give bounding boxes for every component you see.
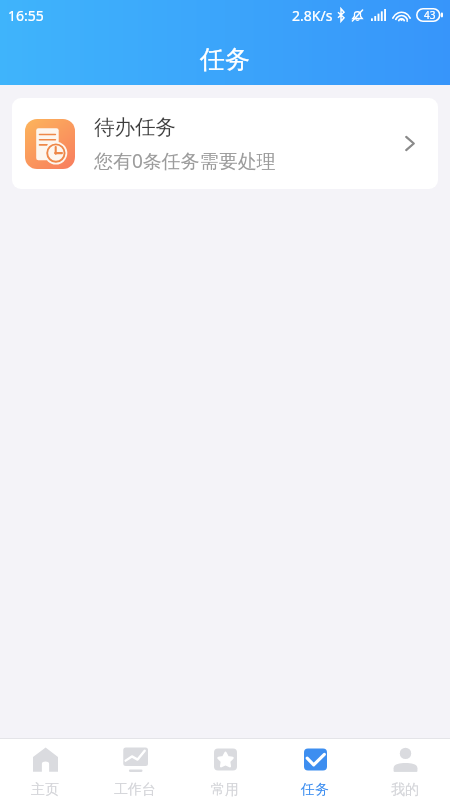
staticText: 43 — [424, 8, 436, 22]
staticText: 16:55 — [8, 6, 44, 25]
staticText: 主页 — [31, 781, 59, 799]
button[interactable]: 待办任务 — [12, 98, 438, 189]
button[interactable]: 主页 — [0, 739, 90, 800]
button[interactable]: 常用 — [180, 739, 270, 800]
staticText: 我的 — [391, 781, 419, 799]
staticText: 您有0条任务需要处理 — [94, 148, 276, 174]
button[interactable]: 我的 — [360, 739, 450, 800]
staticText: 常用 — [211, 781, 239, 799]
staticText: 工作台 — [114, 781, 156, 799]
staticText: 2.8K/s — [292, 6, 333, 25]
button[interactable]: 工作台 — [90, 739, 180, 800]
staticText: 任务 — [0, 44, 450, 75]
staticText: 待办任务 — [94, 114, 176, 140]
button[interactable]: 任务 — [270, 739, 360, 800]
staticText: 任务 — [301, 781, 329, 799]
